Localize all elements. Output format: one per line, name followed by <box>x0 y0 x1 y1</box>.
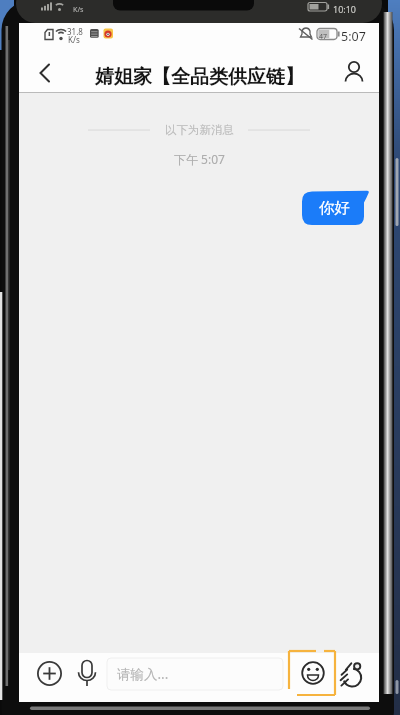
staticText: 31.8 <box>67 26 83 37</box>
staticText: K/s <box>68 34 80 45</box>
button[interactable] <box>337 659 364 688</box>
button[interactable] <box>338 58 372 90</box>
button[interactable] <box>28 58 62 90</box>
button[interactable]: 请输入... <box>107 658 283 690</box>
button[interactable]: 你好 <box>302 191 366 225</box>
staticText: 婧姐家【全品类供应链】 <box>95 65 304 89</box>
staticText: 5:07 <box>341 28 366 45</box>
staticText: 下午 5:07 <box>174 151 225 167</box>
staticText: 以下为新消息 <box>165 123 234 137</box>
staticText: 47 <box>319 32 328 42</box>
button[interactable] <box>37 661 62 686</box>
staticText: 请输入... <box>117 665 169 683</box>
staticText: K/s <box>73 4 84 14</box>
staticText: 10:10 <box>333 3 357 15</box>
button[interactable] <box>75 659 99 687</box>
staticText: 你好 <box>319 198 350 218</box>
button[interactable] <box>300 660 326 686</box>
